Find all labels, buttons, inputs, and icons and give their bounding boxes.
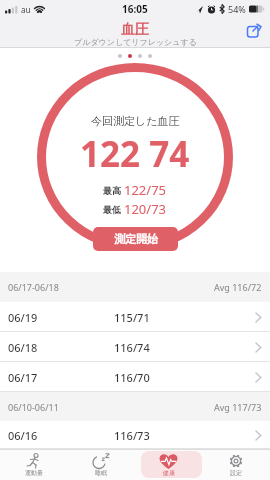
staticText: Avg 117/73 <box>214 401 262 413</box>
staticText: 120/73 <box>124 200 167 218</box>
button[interactable]: 測定開始 <box>93 227 178 251</box>
staticText: 06/17-06/18 <box>8 281 59 293</box>
staticText: 血圧 <box>121 21 149 39</box>
staticText: 睡眠 <box>95 469 107 477</box>
staticText: 16:05 <box>122 2 148 16</box>
staticText: 06/17 <box>8 370 38 385</box>
staticText: 今回測定した血圧 <box>91 114 180 128</box>
button[interactable]: 睡眠 <box>67 450 134 480</box>
staticText: 06/18 <box>8 340 38 355</box>
staticText: 116/70 <box>114 370 150 385</box>
staticText: 06/16 <box>8 428 38 443</box>
button[interactable]: 06/19 <box>0 302 270 332</box>
staticText: 115/71 <box>114 310 150 325</box>
staticText: 06/10-06/11 <box>8 401 59 413</box>
staticText: 122 74 <box>80 130 190 178</box>
staticText: 最低 <box>103 203 124 215</box>
staticText: プルダウンしてリフレッシュする <box>74 37 197 47</box>
staticText: 122/75 <box>124 181 167 199</box>
button[interactable]: 06/16 <box>0 421 270 449</box>
button[interactable]: 健康 <box>134 450 202 480</box>
button[interactable] <box>246 22 262 38</box>
staticText: Avg 116/72 <box>214 281 262 293</box>
staticText: 運動量 <box>25 469 43 477</box>
staticText: au <box>21 4 31 15</box>
staticText: 06/19 <box>8 310 38 325</box>
staticText: 54% <box>228 3 246 15</box>
staticText: 測定開始 <box>114 232 158 246</box>
staticText: 設定 <box>230 469 242 477</box>
staticText: 健康 <box>163 469 175 477</box>
staticText: 116/73 <box>114 428 150 443</box>
button[interactable]: 設定 <box>202 450 270 480</box>
button[interactable]: 運動量 <box>0 450 67 480</box>
button[interactable]: 06/18 <box>0 332 270 362</box>
staticText: 116/74 <box>114 340 150 355</box>
staticText: 最高 <box>103 184 124 196</box>
button[interactable]: 06/17 <box>0 362 270 392</box>
